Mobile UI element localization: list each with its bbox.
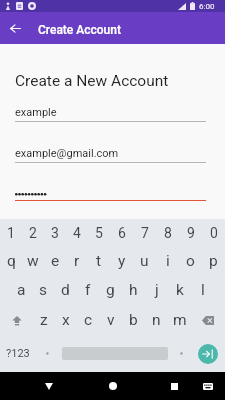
- staticText: i: [166, 252, 170, 270]
- staticText: v: [107, 311, 115, 329]
- staticText: z: [40, 311, 48, 329]
- button[interactable]: p: [202, 246, 225, 275]
- button[interactable]: a: [10, 275, 32, 305]
- staticText: w: [27, 252, 39, 270]
- button[interactable]: b: [122, 305, 145, 335]
- button[interactable]: 9: [179, 219, 202, 246]
- staticText: s: [39, 281, 47, 299]
- button[interactable]: 1: [0, 219, 22, 246]
- staticText: o: [186, 252, 195, 270]
- button[interactable]: 4: [66, 219, 88, 246]
- button[interactable]: Enter: [198, 344, 218, 364]
- button[interactable]: 6: [110, 219, 133, 246]
- staticText: e: [51, 252, 60, 270]
- button[interactable]: r: [66, 246, 88, 275]
- button[interactable]: Comma: [37, 335, 57, 372]
- button[interactable]: d: [54, 275, 76, 305]
- button[interactable]: example: [15, 106, 206, 122]
- staticText: g: [106, 281, 115, 299]
- button[interactable]: c: [77, 305, 99, 335]
- button[interactable]: k: [168, 275, 191, 305]
- button[interactable]: 3: [44, 219, 66, 246]
- button[interactable]: f: [76, 275, 99, 305]
- staticText: 2: [29, 225, 37, 241]
- staticText: j: [155, 281, 159, 299]
- staticText: l: [201, 281, 205, 299]
- staticText: example: [15, 106, 57, 119]
- button[interactable]: j: [145, 275, 168, 305]
- staticText: 1: [7, 225, 15, 241]
- button[interactable]: Change keyboard: [198, 372, 218, 400]
- staticText: t: [96, 252, 102, 270]
- button[interactable]: n: [145, 305, 168, 335]
- staticText: q: [7, 252, 16, 270]
- button[interactable]: Period: [172, 335, 190, 372]
- button[interactable]: 7: [133, 219, 156, 246]
- staticText: 4: [73, 225, 81, 241]
- button[interactable]: t: [88, 246, 110, 275]
- button[interactable]: [15, 188, 206, 201]
- button[interactable]: x: [55, 305, 77, 335]
- button[interactable]: q: [0, 246, 22, 275]
- button[interactable]: 0: [202, 219, 225, 246]
- staticText: p: [209, 252, 218, 270]
- staticText: 0: [210, 225, 218, 241]
- staticText: Create a New Account: [15, 72, 169, 90]
- button[interactable]: example@gmail.com: [15, 147, 206, 163]
- button[interactable]: g: [99, 275, 122, 305]
- staticText: b: [129, 311, 138, 329]
- button[interactable]: h: [122, 275, 145, 305]
- staticText: 6: [118, 225, 126, 241]
- staticText: r: [74, 252, 80, 270]
- button[interactable]: l: [191, 275, 214, 305]
- button[interactable]: o: [179, 246, 202, 275]
- button[interactable]: m: [168, 305, 191, 335]
- staticText: Create Account: [38, 23, 121, 37]
- button[interactable]: 2: [22, 219, 44, 246]
- staticText: f: [85, 281, 91, 299]
- button[interactable]: z: [33, 305, 55, 335]
- button[interactable]: Backspace: [191, 305, 225, 335]
- button[interactable]: e: [44, 246, 66, 275]
- button[interactable]: i: [156, 246, 179, 275]
- staticText: 8: [164, 225, 172, 241]
- staticText: a: [17, 281, 26, 299]
- button[interactable]: 8: [156, 219, 179, 246]
- staticText: h: [129, 281, 138, 299]
- button[interactable]: Back: [38, 372, 59, 400]
- staticText: d: [61, 281, 70, 299]
- button[interactable]: Shift: [0, 305, 33, 335]
- button[interactable]: u: [133, 246, 156, 275]
- staticText: u: [140, 252, 149, 270]
- button[interactable]: v: [99, 305, 122, 335]
- staticText: n: [152, 311, 161, 329]
- staticText: k: [176, 281, 184, 299]
- button[interactable]: ?123: [3, 335, 33, 372]
- staticText: example@gmail.com: [15, 147, 119, 160]
- staticText: 9: [187, 225, 195, 241]
- button[interactable]: Home: [102, 372, 123, 400]
- staticText: 7: [141, 225, 149, 241]
- button[interactable]: Navigate up: [0, 12, 30, 44]
- staticText: y: [118, 252, 126, 270]
- staticText: 3: [51, 225, 59, 241]
- button[interactable]: w: [22, 246, 44, 275]
- staticText: m: [173, 311, 187, 329]
- staticText: 6:00: [199, 2, 215, 11]
- button[interactable]: 5: [88, 219, 110, 246]
- staticText: x: [62, 311, 70, 329]
- button[interactable]: Recent apps: [164, 372, 185, 400]
- button[interactable]: s: [32, 275, 54, 305]
- staticText: ?123: [6, 347, 30, 360]
- button[interactable]: y: [110, 246, 133, 275]
- staticText: 5: [95, 225, 103, 241]
- staticText: c: [84, 311, 93, 329]
